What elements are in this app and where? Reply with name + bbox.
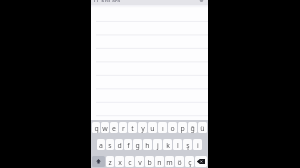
button[interactable]: a xyxy=(97,139,105,150)
staticText: ö xyxy=(177,158,182,167)
button[interactable]: z xyxy=(106,156,114,167)
button[interactable] xyxy=(91,36,208,50)
button[interactable]: Q Kişi ara xyxy=(91,0,208,5)
button[interactable]: k xyxy=(163,139,172,150)
button[interactable]: q xyxy=(92,122,100,133)
staticText: w xyxy=(102,124,108,133)
staticText: ü xyxy=(200,124,205,133)
staticText: q xyxy=(94,124,99,133)
staticText: ı xyxy=(162,124,164,133)
button[interactable]: h xyxy=(143,139,152,150)
button[interactable]: r xyxy=(119,122,127,133)
button[interactable]: u xyxy=(148,122,157,133)
staticText: i xyxy=(197,141,199,150)
button[interactable]: ç xyxy=(185,156,194,167)
staticText: p xyxy=(180,124,185,133)
staticText: a xyxy=(99,141,103,150)
button[interactable]: d xyxy=(115,139,123,150)
button[interactable]: s xyxy=(106,139,114,150)
button[interactable]: ü xyxy=(198,122,207,133)
staticText: f xyxy=(127,141,130,150)
button[interactable]: y xyxy=(138,122,147,133)
button[interactable]: v xyxy=(135,156,144,167)
staticText: ş xyxy=(186,141,190,150)
staticText: l xyxy=(177,141,179,150)
staticText: g xyxy=(135,141,140,150)
button[interactable] xyxy=(91,64,208,78)
staticText: ç xyxy=(188,158,192,167)
staticText: k xyxy=(166,141,170,150)
button[interactable]: ş xyxy=(183,139,192,150)
button[interactable]: c xyxy=(125,156,134,167)
staticText: e xyxy=(112,124,116,133)
button[interactable]: x xyxy=(115,156,124,167)
button[interactable]: Shift xyxy=(92,156,105,167)
staticText: d xyxy=(117,141,122,150)
button[interactable]: b xyxy=(145,156,154,167)
staticText: s xyxy=(108,141,112,150)
staticText: t xyxy=(131,124,134,133)
staticText: h xyxy=(145,141,150,150)
button[interactable]: ğ xyxy=(188,122,197,133)
staticText: b xyxy=(147,158,152,167)
staticText: z xyxy=(108,158,112,167)
button[interactable]: ö xyxy=(175,156,184,167)
button[interactable]: p xyxy=(178,122,187,133)
staticText: m xyxy=(166,158,173,167)
button[interactable]: g xyxy=(133,139,142,150)
staticText: c xyxy=(128,158,132,167)
staticText: y xyxy=(141,124,145,133)
button[interactable]: n xyxy=(155,156,164,167)
staticText: r xyxy=(122,124,125,133)
staticText: n xyxy=(157,158,162,167)
button[interactable] xyxy=(91,92,208,106)
button[interactable]: e xyxy=(110,122,118,133)
staticText: ğ xyxy=(190,124,195,133)
staticText: j xyxy=(157,141,159,150)
button[interactable]: j xyxy=(153,139,162,150)
button[interactable]: i xyxy=(193,139,202,150)
button[interactable]: m xyxy=(165,156,174,167)
button[interactable] xyxy=(91,8,208,22)
staticText: v xyxy=(138,158,142,167)
button[interactable]: Backspace xyxy=(195,156,207,167)
staticText: x xyxy=(118,158,122,167)
staticText: Q Kişi ara xyxy=(94,0,121,2)
button[interactable]: t xyxy=(128,122,137,133)
button[interactable]: l xyxy=(173,139,182,150)
button[interactable]: ı xyxy=(158,122,167,133)
button[interactable]: w xyxy=(101,122,109,133)
staticText: u xyxy=(150,124,155,133)
button[interactable]: f xyxy=(124,139,132,150)
button[interactable]: o xyxy=(168,122,177,133)
button[interactable] xyxy=(91,106,208,120)
staticText: o xyxy=(170,124,175,133)
